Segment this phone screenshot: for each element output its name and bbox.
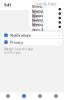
staticText: Sort & Filter bbox=[36, 1, 57, 7]
staticText: Menu item 3 bbox=[32, 17, 43, 28]
button[interactable]: Privacy bbox=[2, 39, 62, 45]
button[interactable]: Menu item 2 bbox=[29, 16, 64, 20]
button[interactable]: Tab 0 bbox=[0, 92, 16, 100]
button[interactable]: Tab 1 bbox=[16, 92, 32, 100]
staticText: > bbox=[58, 33, 60, 38]
button[interactable]: Menu item 0 bbox=[29, 7, 64, 11]
staticText: Privacy bbox=[10, 39, 23, 45]
staticText: > bbox=[58, 39, 60, 45]
staticText: 9:41 bbox=[4, 2, 11, 8]
staticText: Menu item 1 bbox=[32, 8, 43, 19]
staticText: Menu item 2 bbox=[32, 13, 43, 23]
button[interactable]: Menu item 1 bbox=[29, 11, 64, 16]
button[interactable]: Menu item 4 bbox=[29, 25, 64, 29]
staticText: Menu item 0 bbox=[32, 4, 43, 14]
staticText: ıll ≈ ▮ bbox=[50, 2, 60, 8]
button[interactable]: Tab 3 bbox=[48, 92, 64, 100]
button[interactable]: Notifications bbox=[2, 32, 62, 38]
button[interactable]: Menu item 3 bbox=[29, 20, 64, 25]
staticText: Menu item 4 bbox=[32, 21, 43, 32]
staticText: Notifications bbox=[10, 33, 31, 38]
button[interactable]: Tab 2 bbox=[32, 92, 48, 100]
staticText: Manage how this app notifies you. bbox=[4, 47, 33, 54]
